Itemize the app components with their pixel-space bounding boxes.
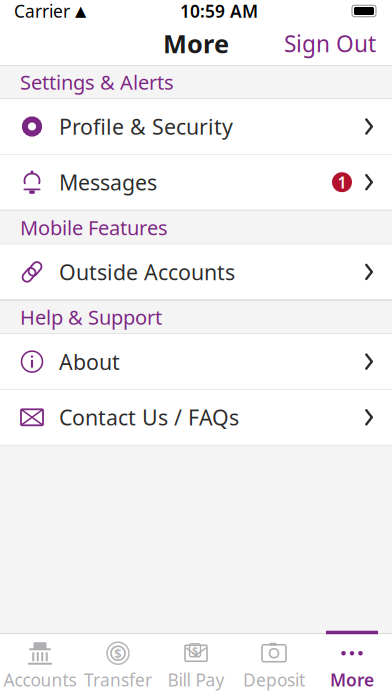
staticText: 10:59 AM	[180, 0, 258, 22]
staticText: Mobile Features	[20, 214, 168, 241]
staticText: Messages	[59, 168, 157, 196]
button[interactable]: $	[79, 633, 157, 696]
button[interactable]: About	[0, 334, 392, 390]
staticText: Outside Accounts	[59, 258, 235, 286]
button[interactable]: Accounts	[1, 633, 79, 696]
button[interactable]: Contact Us / FAQs	[0, 390, 392, 445]
button[interactable]: Profile & Security	[0, 99, 392, 155]
staticText: Contact Us / FAQs	[59, 403, 239, 431]
button[interactable]: $	[157, 633, 235, 696]
button[interactable]: Messages	[0, 155, 392, 210]
staticText: 1	[337, 172, 346, 193]
staticText: $	[114, 644, 122, 662]
staticText: Settings & Alerts	[20, 69, 174, 95]
staticText: About	[59, 347, 120, 376]
button[interactable]: Outside Accounts	[0, 244, 392, 300]
staticText: Carrier	[14, 0, 70, 22]
staticText: Sign Out	[284, 28, 376, 58]
staticText: ▲	[75, 3, 86, 19]
button[interactable]: More	[313, 633, 391, 696]
staticText: Deposit	[243, 668, 305, 691]
button[interactable]: Deposit	[235, 633, 313, 696]
button[interactable]: Sign Out	[284, 28, 392, 58]
staticText: Transfer	[84, 668, 152, 691]
staticText: Profile & Security	[59, 112, 233, 141]
staticText: Bill Pay	[167, 668, 224, 691]
staticText: More	[163, 27, 229, 60]
staticText: More	[330, 668, 374, 691]
staticText: Help & Support	[20, 304, 162, 330]
staticText: Accounts	[3, 668, 76, 691]
staticText: $	[192, 643, 198, 657]
